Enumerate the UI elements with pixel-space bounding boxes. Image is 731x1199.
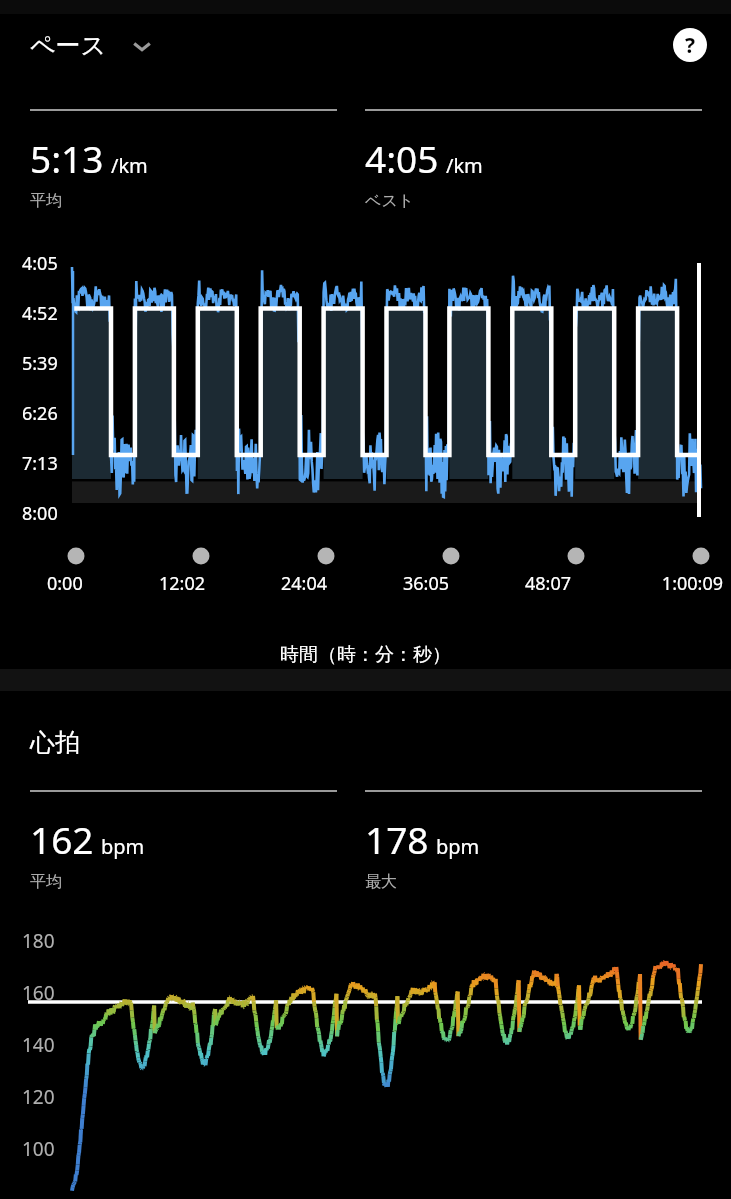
- staticText: 5:39: [22, 351, 58, 376]
- staticText: 178: [365, 814, 429, 864]
- staticText: 4:52: [22, 301, 58, 326]
- staticText: 12:02: [121, 571, 243, 596]
- staticText: /km: [111, 152, 148, 179]
- staticText: 時間（時：分：秒）: [0, 643, 731, 667]
- button[interactable]: 5:13: [30, 109, 337, 211]
- staticText: 36:05: [365, 571, 487, 596]
- staticText: 4:05: [365, 133, 439, 183]
- staticText: 平均: [30, 872, 62, 892]
- button[interactable]: 4:05: [365, 109, 702, 211]
- staticText: 7:13: [22, 451, 58, 476]
- staticText: 0:00: [47, 571, 121, 596]
- staticText: 8:00: [22, 501, 58, 526]
- button[interactable]: ヘルプ: [673, 28, 707, 62]
- staticText: 140: [22, 1032, 55, 1058]
- staticText: 4:05: [22, 251, 58, 276]
- staticText: 1:00:09: [609, 571, 723, 596]
- staticText: 100: [22, 1136, 55, 1162]
- staticText: 24:04: [243, 571, 365, 596]
- staticText: bpm: [436, 833, 480, 860]
- button[interactable]: 178: [365, 790, 702, 892]
- staticText: 120: [22, 1084, 55, 1110]
- staticText: ?: [685, 31, 696, 60]
- button[interactable]: ペース: [30, 30, 163, 61]
- staticText: 162: [30, 814, 94, 864]
- staticText: 48:07: [487, 571, 609, 596]
- staticText: 最大: [365, 872, 397, 892]
- staticText: 平均: [30, 191, 62, 211]
- button[interactable]: 162: [30, 790, 337, 892]
- staticText: 5:13: [30, 133, 104, 183]
- staticText: 180: [22, 928, 55, 954]
- staticText: bpm: [101, 833, 145, 860]
- staticText: 160: [22, 980, 55, 1006]
- staticText: ペース: [30, 30, 107, 61]
- staticText: 6:26: [22, 401, 58, 426]
- staticText: /km: [446, 152, 483, 179]
- staticText: ベスト: [365, 191, 415, 211]
- button[interactable]: 心拍: [30, 727, 80, 758]
